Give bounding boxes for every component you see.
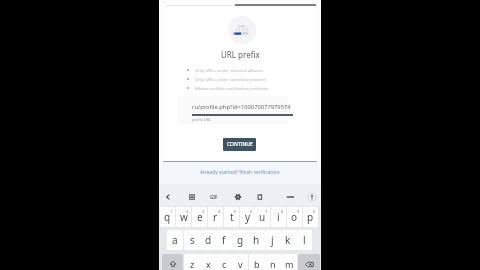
button[interactable]: Clipboard <box>254 191 266 203</box>
button[interactable]: Previous <box>162 191 174 203</box>
staticText: c <box>222 258 227 270</box>
button[interactable]: CONTINUE <box>223 138 256 151</box>
button[interactable]: f <box>216 230 232 250</box>
staticText: ru/profile.php?id=100070077979574 <box>192 103 291 111</box>
staticText: j <box>271 233 274 247</box>
button[interactable]: Stickers <box>186 191 198 203</box>
button[interactable]: j <box>264 230 280 250</box>
staticText: CONTINUE <box>227 141 253 148</box>
button[interactable]: q <box>160 207 175 227</box>
staticText: y <box>245 210 251 224</box>
staticText: prefix URL <box>192 117 212 122</box>
staticText: p <box>307 210 314 224</box>
button[interactable]: i <box>271 207 286 227</box>
staticText: Allows multiple verification methods <box>195 85 269 91</box>
staticText: Only URLs under selected alliance <box>195 67 264 73</box>
button[interactable]: u <box>255 207 270 227</box>
button[interactable]: l <box>296 230 312 250</box>
button[interactable]: k <box>280 230 296 250</box>
staticText: 2 <box>186 209 189 214</box>
button[interactable]: e <box>192 207 207 227</box>
button[interactable]: d <box>200 230 216 250</box>
button[interactable]: w <box>176 207 191 227</box>
button[interactable]: g <box>232 230 248 250</box>
staticText: q <box>164 210 171 224</box>
staticText: 6 <box>250 209 253 214</box>
staticText: g <box>237 233 244 247</box>
staticText: 9 <box>297 209 300 214</box>
staticText: x <box>206 258 211 270</box>
staticText: s <box>190 233 195 247</box>
staticText: u <box>259 210 266 224</box>
button[interactable]: Settings <box>232 191 244 203</box>
staticText: z <box>190 258 195 270</box>
button[interactable]: Backspace <box>298 254 320 270</box>
staticText: o <box>291 210 298 224</box>
staticText: v <box>238 258 243 270</box>
staticText: t <box>230 210 234 224</box>
button[interactable]: ru/profile.php?id=100070077979574 <box>177 96 288 124</box>
button[interactable]: s <box>184 230 200 250</box>
staticText: k <box>285 233 291 247</box>
button[interactable]: t <box>224 207 239 227</box>
staticText: f <box>222 233 226 247</box>
button[interactable]: n <box>265 254 281 270</box>
button[interactable]: y <box>240 207 255 227</box>
button[interactable]: GIF <box>206 191 222 203</box>
staticText: 3 <box>202 209 205 214</box>
button[interactable]: Voice input <box>306 191 318 203</box>
staticText: Already started? finish verification <box>200 169 280 176</box>
staticText: a <box>172 233 178 247</box>
staticText: GIF <box>210 194 218 200</box>
staticText: 7 <box>265 209 268 214</box>
staticText: w <box>180 210 188 224</box>
staticText: b <box>254 258 260 270</box>
button[interactable]: Shift <box>162 254 183 270</box>
staticText: n <box>270 258 276 270</box>
staticText: h <box>253 233 260 247</box>
staticText: l <box>303 233 306 247</box>
button[interactable]: x <box>200 254 216 270</box>
staticText: 0 <box>313 209 316 214</box>
staticText: m <box>285 258 294 270</box>
staticText: URL prefix <box>221 49 260 60</box>
button[interactable]: h <box>248 230 264 250</box>
button[interactable]: z <box>184 254 200 270</box>
button[interactable]: Already started? finish verification <box>179 167 301 178</box>
button[interactable]: m <box>281 254 297 270</box>
button[interactable]: r <box>208 207 223 227</box>
staticText: 4 <box>218 209 221 214</box>
staticText: 5 <box>234 209 237 214</box>
button[interactable]: a <box>167 230 183 250</box>
staticText: r <box>213 210 218 224</box>
button[interactable]: b <box>249 254 265 270</box>
staticText: 8 <box>281 209 284 214</box>
button[interactable]: c <box>216 254 232 270</box>
staticText: 1 <box>170 209 173 214</box>
staticText: i <box>277 210 280 224</box>
button[interactable]: p <box>303 207 318 227</box>
button[interactable]: v <box>232 254 248 270</box>
staticText: d <box>205 233 212 247</box>
staticText: e <box>197 210 203 224</box>
button[interactable]: Resize keyboard <box>284 191 296 203</box>
button[interactable]: o <box>287 207 302 227</box>
staticText: Only URLs under specified protocol <box>195 76 266 82</box>
